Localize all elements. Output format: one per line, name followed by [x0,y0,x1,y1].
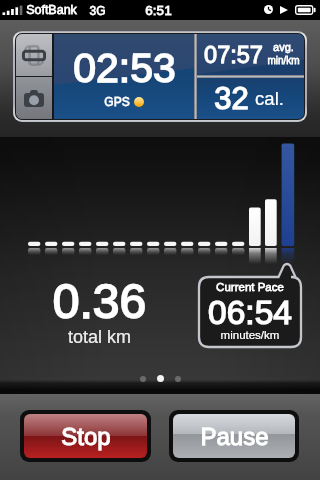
staticText: total km [10,327,189,347]
staticText: 6:51 [145,3,172,18]
button[interactable]: Rotate screen [16,34,52,76]
other: Camera [24,90,44,107]
other: Battery [295,5,316,15]
button[interactable]: Stop [24,414,147,458]
staticText: 02:53 [73,45,176,91]
other: Rotate screen [23,45,45,66]
button[interactable]: 07:57 [197,34,304,75]
staticText: 3G [89,4,106,17]
button[interactable]: Current Pace [199,263,301,347]
staticText: GPS [104,95,130,108]
staticText: SoftBank [26,3,77,17]
staticText: avg. [273,41,294,53]
staticText: Stop [61,423,111,450]
staticText: min/km [267,55,300,66]
staticText: 06:54 [199,294,301,331]
button[interactable]: Camera [16,77,52,119]
button[interactable]: 02:53 [54,34,194,119]
staticText: cal. [255,88,284,109]
button[interactable]: Pause [173,414,295,458]
staticText: minutes/km [199,329,301,342]
other: Playing [280,6,288,14]
staticText: Current Pace [199,281,301,294]
staticText: 0.36 [10,275,189,329]
staticText: Pause [200,423,269,450]
other: Alarm [264,5,273,14]
staticText: 07:57 [204,42,263,68]
staticText: 32 [214,81,249,116]
button[interactable]: 32 [197,78,304,119]
